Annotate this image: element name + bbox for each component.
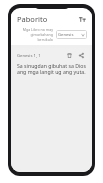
button[interactable]: Genesis 1, 1 — [14, 48, 89, 80]
staticText: Mga Libro na may gimarkahang bersikulo — [19, 27, 53, 42]
button[interactable]: Genesis — [56, 30, 87, 39]
button[interactable]: Share — [77, 51, 86, 60]
staticText: Genesis — [58, 32, 81, 38]
button[interactable]: Font size — [77, 14, 87, 24]
staticText: Paborito — [17, 14, 48, 24]
staticText: Sa sinugdan gibuhat sa Dios ang mga lang… — [17, 62, 86, 76]
button[interactable]: Delete — [65, 51, 74, 60]
staticText: Genesis 1, 1 — [17, 53, 41, 59]
